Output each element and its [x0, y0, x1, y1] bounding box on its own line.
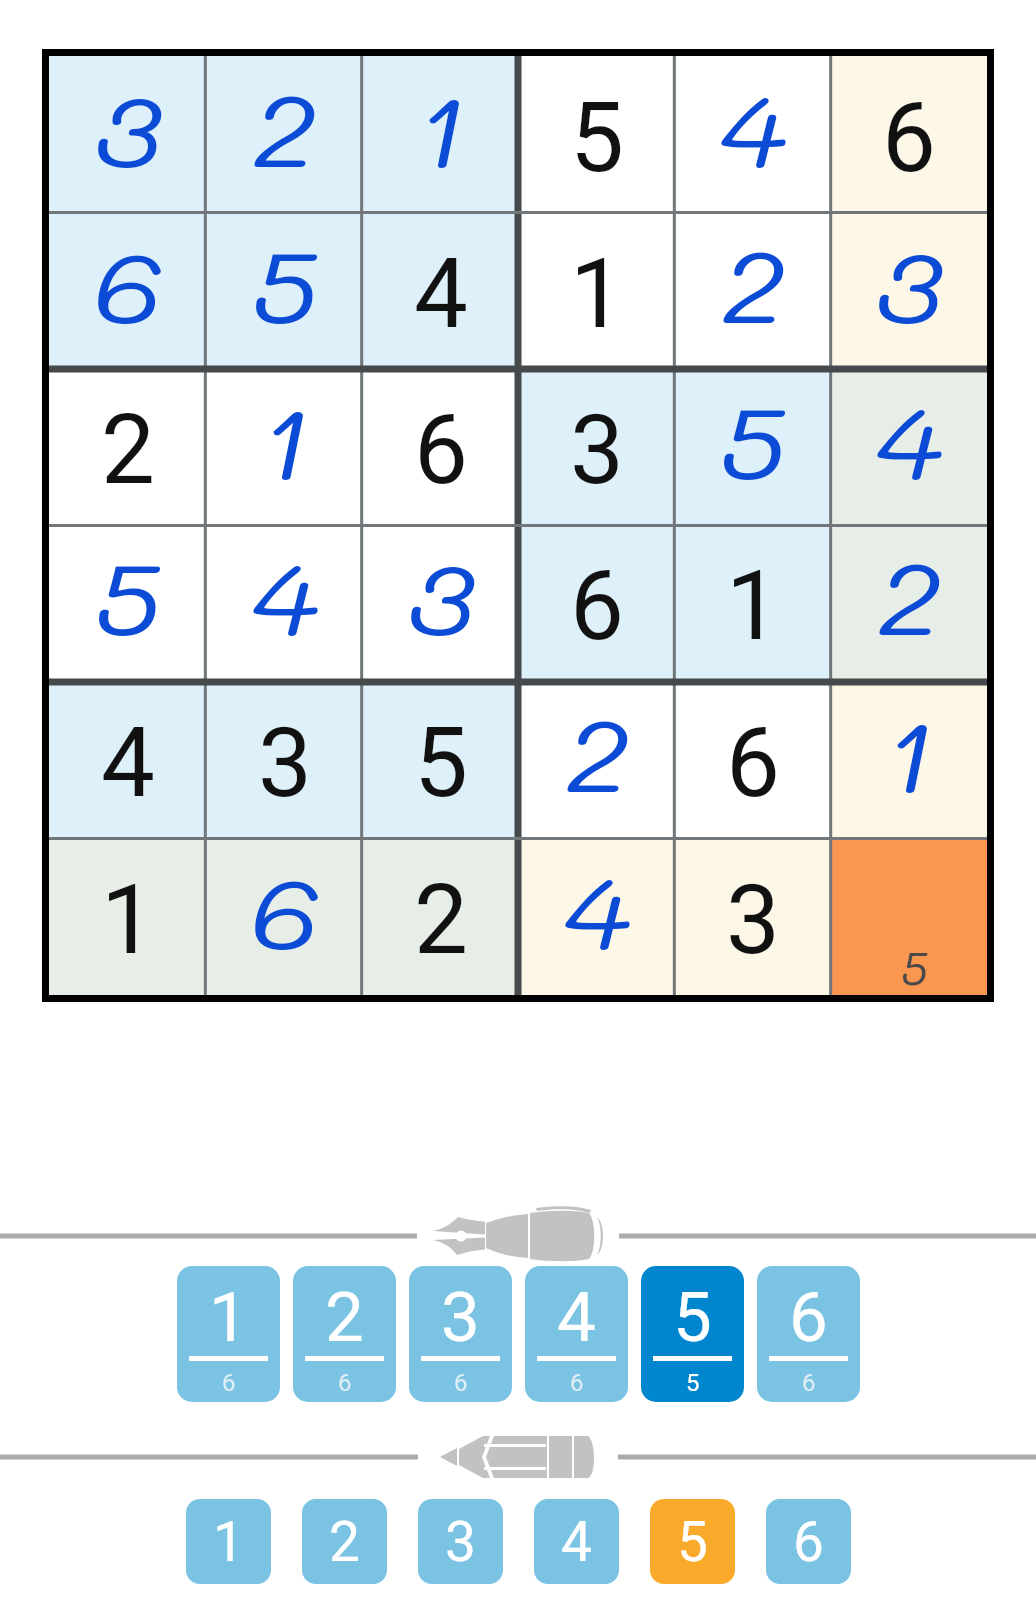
- button[interactable]: 6: [675, 681, 831, 838]
- staticText: 4: [719, 61, 787, 194]
- staticText: 2: [325, 1277, 364, 1358]
- staticText: 3: [407, 529, 475, 662]
- staticText: 2: [329, 1510, 360, 1574]
- staticText: 3: [94, 61, 162, 194]
- staticText: 1: [726, 550, 780, 663]
- staticText: 5: [673, 1277, 712, 1358]
- button[interactable]: 4: [675, 56, 831, 212]
- button[interactable]: 2: [49, 368, 206, 524]
- button[interactable]: 5: [831, 838, 987, 995]
- button[interactable]: 6: [831, 56, 987, 212]
- button[interactable]: 1: [363, 56, 519, 212]
- button[interactable]: 1: [177, 1266, 280, 1402]
- button[interactable]: 5: [650, 1499, 735, 1584]
- button[interactable]: 3: [206, 681, 363, 838]
- button[interactable]: 4: [525, 1266, 628, 1402]
- staticText: 2: [252, 61, 317, 194]
- button[interactable]: 2: [519, 681, 675, 838]
- staticText: 4: [414, 238, 468, 351]
- staticText: 3: [441, 1277, 480, 1358]
- button[interactable]: 2: [363, 838, 519, 995]
- staticText: 6: [414, 394, 468, 507]
- staticText: 6: [338, 1369, 352, 1397]
- button[interactable]: 4: [206, 524, 363, 681]
- button[interactable]: 1: [675, 524, 831, 681]
- button[interactable]: 3: [363, 524, 519, 681]
- staticText: 2: [565, 686, 630, 819]
- button[interactable]: 3: [831, 212, 987, 368]
- staticText: 6: [802, 1369, 816, 1397]
- staticText: 4: [251, 529, 319, 662]
- button[interactable]: 3: [675, 838, 831, 995]
- staticText: 6: [222, 1369, 236, 1397]
- button[interactable]: 2: [293, 1266, 396, 1402]
- staticText: 1: [213, 1510, 244, 1574]
- button[interactable]: Pen mode: [433, 1206, 604, 1266]
- button[interactable]: 6: [519, 524, 675, 681]
- staticText: 3: [726, 864, 780, 977]
- staticText: 4: [563, 843, 631, 976]
- staticText: 2: [877, 529, 942, 662]
- staticText: 1: [415, 61, 467, 194]
- button[interactable]: 5: [206, 212, 363, 368]
- button[interactable]: 3: [519, 368, 675, 524]
- button[interactable]: 5: [675, 368, 831, 524]
- button[interactable]: 6: [206, 838, 363, 995]
- button[interactable]: 5: [363, 681, 519, 838]
- staticText: 1: [570, 238, 624, 351]
- staticText: 5: [570, 82, 624, 195]
- staticText: 6: [570, 550, 624, 663]
- button[interactable]: 4: [519, 838, 675, 995]
- staticText: 5: [414, 707, 468, 820]
- staticText: 5: [251, 217, 319, 350]
- staticText: 3: [875, 217, 943, 350]
- button[interactable]: 4: [363, 212, 519, 368]
- button[interactable]: 2: [675, 212, 831, 368]
- button[interactable]: 1: [49, 838, 206, 995]
- button[interactable]: 4: [49, 681, 206, 838]
- staticText: 6: [454, 1369, 468, 1397]
- button[interactable]: 3: [409, 1266, 512, 1402]
- button[interactable]: 5: [49, 524, 206, 681]
- button[interactable]: 2: [206, 56, 363, 212]
- button[interactable]: 3: [418, 1499, 503, 1584]
- staticText: 6: [793, 1510, 824, 1574]
- staticText: 4: [875, 373, 943, 506]
- button[interactable]: 6: [49, 212, 206, 368]
- staticText: 2: [721, 217, 786, 350]
- button[interactable]: 1: [186, 1499, 271, 1584]
- button[interactable]: 2: [302, 1499, 387, 1584]
- button[interactable]: 5: [519, 56, 675, 212]
- staticText: 6: [250, 843, 320, 976]
- staticText: 6: [882, 82, 936, 195]
- button[interactable]: 1: [519, 212, 675, 368]
- button[interactable]: 6: [757, 1266, 860, 1402]
- staticText: 5: [901, 938, 928, 998]
- staticText: 6: [93, 217, 163, 350]
- staticText: 1: [101, 864, 155, 977]
- staticText: 3: [570, 394, 624, 507]
- staticText: 5: [94, 529, 162, 662]
- button[interactable]: 6: [363, 368, 519, 524]
- staticText: 1: [209, 1277, 248, 1358]
- button[interactable]: 1: [206, 368, 363, 524]
- button[interactable]: 3: [49, 56, 206, 212]
- staticText: 5: [677, 1510, 708, 1574]
- button[interactable]: 6: [766, 1499, 851, 1584]
- staticText: 1: [883, 686, 935, 819]
- staticText: 6: [789, 1277, 828, 1358]
- staticText: 4: [561, 1510, 592, 1574]
- staticText: 5: [686, 1369, 700, 1397]
- staticText: 3: [445, 1510, 476, 1574]
- staticText: 6: [570, 1369, 584, 1397]
- staticText: 1: [259, 373, 311, 506]
- staticText: 2: [414, 864, 468, 977]
- button[interactable]: 4: [831, 368, 987, 524]
- button[interactable]: 5: [641, 1266, 744, 1402]
- button[interactable]: 4: [534, 1499, 619, 1584]
- button[interactable]: 1: [831, 681, 987, 838]
- button[interactable]: 2: [831, 524, 987, 681]
- staticText: 3: [258, 707, 312, 820]
- staticText: 5: [719, 373, 787, 506]
- button[interactable]: Pencil mode: [440, 1435, 597, 1479]
